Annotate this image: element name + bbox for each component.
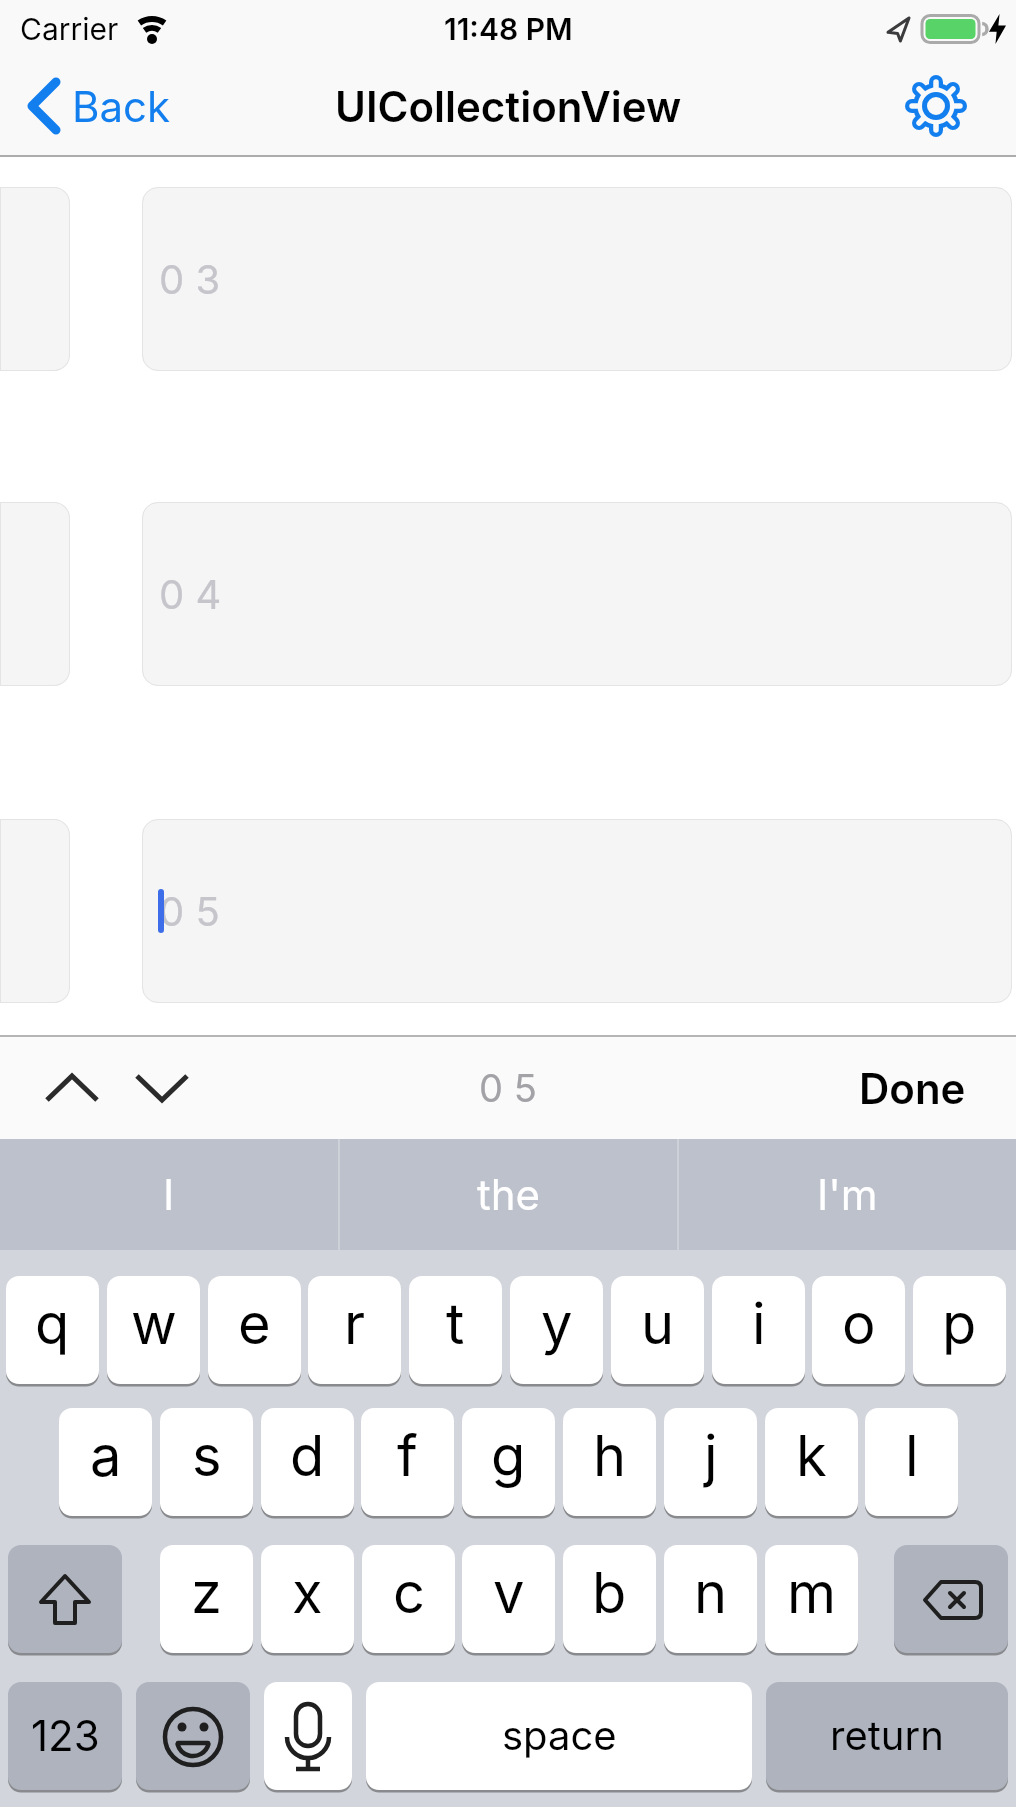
button[interactable]: m <box>765 1545 858 1655</box>
staticText: 0 5 <box>159 887 220 935</box>
staticText: o <box>842 1290 876 1358</box>
button[interactable]: d <box>261 1408 354 1518</box>
button[interactable]: p <box>913 1276 1006 1386</box>
staticText: Back <box>72 81 171 132</box>
staticText: k <box>796 1422 827 1490</box>
button[interactable]: j <box>664 1408 757 1518</box>
staticText: c <box>393 1559 425 1627</box>
staticText: n <box>694 1559 728 1627</box>
button[interactable]: w <box>107 1276 200 1386</box>
staticText: h <box>593 1422 627 1490</box>
button[interactable] <box>44 1071 100 1105</box>
staticText: l <box>905 1422 919 1490</box>
button[interactable]: v <box>462 1545 555 1655</box>
button[interactable]: r <box>308 1276 401 1386</box>
staticText: I <box>163 1169 175 1220</box>
staticText: the <box>477 1169 541 1220</box>
staticText: e <box>238 1290 271 1358</box>
button[interactable]: 0 4 <box>142 502 1012 686</box>
button[interactable]: 0 3 <box>142 187 1012 371</box>
button[interactable]: h <box>563 1408 656 1518</box>
staticText: i <box>752 1290 766 1358</box>
button[interactable]: g <box>462 1408 555 1518</box>
button[interactable]: a <box>59 1408 152 1518</box>
staticText: r <box>344 1290 366 1358</box>
button[interactable] <box>8 1545 122 1655</box>
button[interactable]: i <box>712 1276 805 1386</box>
button[interactable] <box>134 1071 190 1105</box>
staticText: d <box>290 1422 325 1490</box>
staticText: t <box>446 1290 465 1358</box>
staticText: 0 5 <box>479 1065 537 1111</box>
button[interactable]: 123 <box>8 1682 122 1792</box>
button[interactable] <box>894 1545 1008 1655</box>
staticText: j <box>704 1422 718 1490</box>
button[interactable]: t <box>409 1276 502 1386</box>
staticText: f <box>397 1422 418 1490</box>
button[interactable]: return <box>766 1682 1008 1792</box>
button[interactable]: e <box>208 1276 301 1386</box>
staticText: a <box>90 1422 122 1490</box>
staticText: 123 <box>31 1710 100 1761</box>
button[interactable]: k <box>765 1408 858 1518</box>
staticText: p <box>942 1290 977 1358</box>
staticText: x <box>292 1559 323 1627</box>
staticText: space <box>502 1711 617 1759</box>
button[interactable] <box>264 1682 352 1792</box>
button[interactable]: b <box>563 1545 656 1655</box>
button[interactable]: x <box>261 1545 354 1655</box>
staticText: u <box>641 1290 675 1358</box>
staticText: b <box>592 1559 627 1627</box>
staticText: I'm <box>817 1169 878 1220</box>
staticText: y <box>541 1290 573 1358</box>
staticText: g <box>491 1422 526 1490</box>
staticText: m <box>787 1559 837 1627</box>
staticText: 11:48 PM <box>444 11 573 47</box>
staticText: UICollectionView <box>335 81 682 132</box>
staticText: s <box>192 1422 222 1490</box>
button[interactable]: f <box>361 1408 454 1518</box>
staticText: z <box>191 1559 222 1627</box>
button[interactable]: c <box>362 1545 455 1655</box>
button[interactable]: n <box>664 1545 757 1655</box>
button[interactable]: u <box>611 1276 704 1386</box>
button[interactable]: q <box>6 1276 99 1386</box>
button[interactable]: I <box>0 1139 338 1250</box>
button[interactable]: the <box>340 1139 677 1250</box>
button[interactable]: 0 5 <box>142 819 1012 1003</box>
button[interactable]: Back <box>26 78 171 134</box>
staticText: Carrier <box>20 11 119 47</box>
button[interactable]: z <box>160 1545 253 1655</box>
button[interactable]: space <box>366 1682 752 1792</box>
staticText: return <box>830 1711 944 1759</box>
button[interactable] <box>136 1682 250 1792</box>
button[interactable]: o <box>812 1276 905 1386</box>
button[interactable] <box>902 72 970 140</box>
staticText: w <box>131 1290 177 1358</box>
staticText: 0 4 <box>159 570 222 618</box>
button[interactable]: y <box>510 1276 603 1386</box>
staticText: v <box>493 1559 525 1627</box>
staticText: q <box>35 1290 70 1358</box>
staticText: Done <box>859 1063 966 1114</box>
button[interactable]: I'm <box>679 1139 1016 1250</box>
button[interactable]: l <box>865 1408 958 1518</box>
button[interactable]: s <box>160 1408 253 1518</box>
staticText: 0 3 <box>159 255 221 303</box>
button[interactable]: Done <box>859 1063 966 1114</box>
